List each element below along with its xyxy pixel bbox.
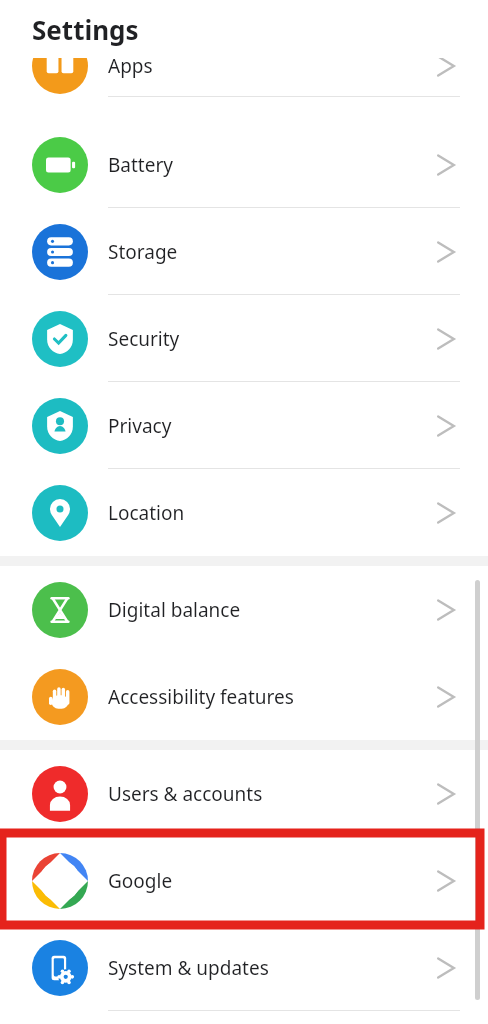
staticText: Battery (108, 152, 173, 178)
staticText: System & updates (108, 955, 269, 981)
button[interactable]: Digital balance (0, 566, 488, 653)
staticText: Privacy (108, 413, 172, 439)
staticText: Settings (32, 12, 139, 47)
staticText: Google (108, 868, 173, 894)
staticText: Digital balance (108, 597, 241, 623)
button[interactable]: Google (0, 837, 488, 924)
staticText: Storage (108, 239, 178, 265)
button[interactable]: Users & accounts (0, 750, 488, 837)
button[interactable]: Storage (0, 208, 488, 295)
staticText: Location (108, 500, 185, 526)
button[interactable]: Battery (0, 121, 488, 208)
button[interactable]: Location (0, 469, 488, 556)
staticText: Apps (108, 58, 153, 79)
button[interactable]: Apps (0, 58, 488, 97)
button[interactable]: Privacy (0, 382, 488, 469)
button[interactable]: System & updates (0, 924, 488, 1011)
staticText: Accessibility features (108, 684, 294, 710)
staticText: Users & accounts (108, 781, 263, 807)
button[interactable]: Security (0, 295, 488, 382)
staticText: Security (108, 326, 180, 352)
button[interactable]: Accessibility features (0, 653, 488, 740)
